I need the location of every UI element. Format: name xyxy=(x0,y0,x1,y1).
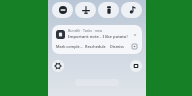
button[interactable]: Airplane mode xyxy=(75,2,96,18)
button[interactable]: Reschedule xyxy=(85,43,110,50)
button[interactable]: Notification settings xyxy=(131,43,138,50)
button[interactable]: Power xyxy=(130,60,142,72)
staticText: Dismiss xyxy=(110,44,124,49)
button[interactable]: Flashlight xyxy=(98,2,119,18)
staticText: Mark comple... xyxy=(56,44,83,49)
staticText: Bundtli · Tasks · now xyxy=(68,28,103,33)
staticText: Important note - I like potato! xyxy=(68,34,128,40)
button[interactable]: Collapse xyxy=(131,31,138,38)
button[interactable]: Settings xyxy=(52,60,64,72)
button[interactable]: Bundtli · Tasks · now xyxy=(52,25,142,54)
button[interactable]: Do not disturb xyxy=(52,2,73,18)
staticText: Reschedule xyxy=(85,44,106,49)
button[interactable]: Dismiss xyxy=(110,43,131,50)
button[interactable]: Media xyxy=(121,2,142,18)
button[interactable]: Mark comple... xyxy=(56,43,85,50)
